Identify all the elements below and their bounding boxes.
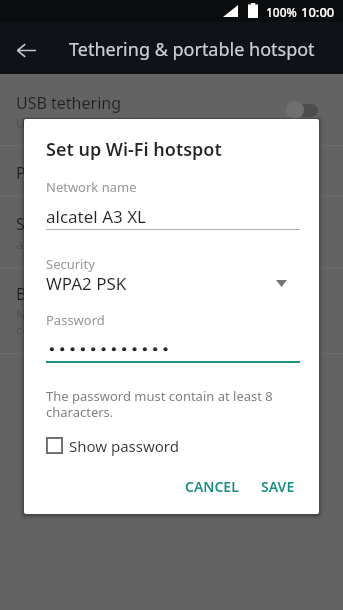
staticText: Network name — [46, 178, 137, 196]
button[interactable]: Back — [8, 32, 44, 68]
staticText: Set up Wi-Fi hotspot — [16, 213, 167, 235]
staticText: Not sharing this phone's Internet connec… — [16, 305, 219, 338]
button[interactable]: CANCEL — [177, 469, 247, 504]
button[interactable]: Bluetooth tethering — [0, 268, 343, 354]
staticText: Tethering & portable hotspot — [69, 37, 315, 62]
staticText: Security — [46, 255, 95, 273]
staticText: 10:00 — [301, 3, 335, 21]
staticText: USB connected, tethering on — [16, 114, 192, 132]
staticText: Show password — [69, 436, 179, 456]
staticText: WPA2 PSK — [46, 272, 127, 295]
button[interactable]: Portable Wi-Fi hotspot — [0, 146, 343, 197]
staticText: Set up Wi-Fi hotspot — [46, 137, 222, 162]
staticText: CANCEL — [185, 477, 239, 496]
button[interactable]: USB tethering — [0, 74, 343, 146]
staticText: alcatel A3 XL WPA2 PSK portable Wi-Fi ho… — [16, 235, 213, 268]
button[interactable]: Show password — [42, 433, 179, 458]
staticText: The password must contain at least 8 cha… — [46, 387, 286, 420]
staticText: 100% — [266, 4, 297, 20]
staticText: Bluetooth tethering — [16, 283, 165, 305]
staticText: SAVE — [261, 477, 295, 496]
button[interactable]: WPA2 PSK — [46, 272, 287, 295]
button[interactable]: SAVE — [253, 469, 303, 504]
staticText: Portable Wi-Fi hotspot — [16, 162, 183, 184]
staticText: Password — [46, 311, 105, 329]
staticText: alcatel A3 XL — [46, 205, 147, 228]
button[interactable]: Set up Wi-Fi hotspot — [0, 197, 343, 268]
staticText: USB tethering — [16, 92, 121, 114]
